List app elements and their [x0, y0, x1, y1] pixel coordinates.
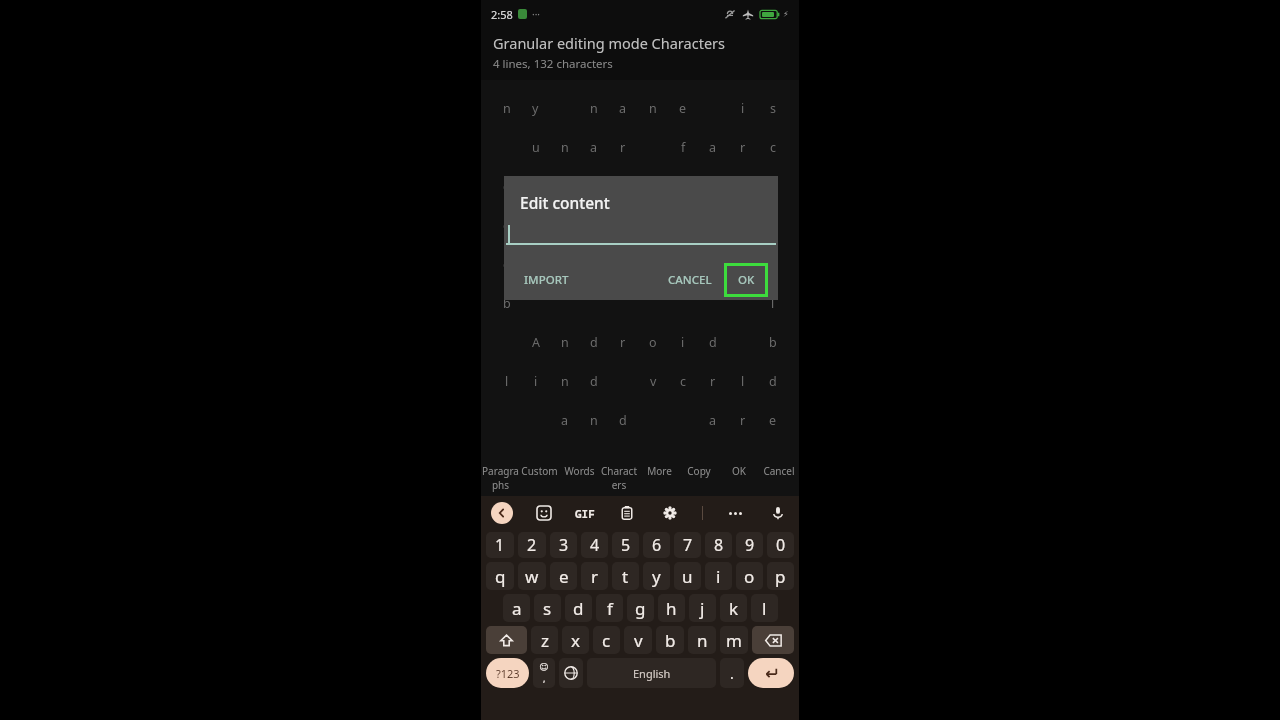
button[interactable]: More [639, 464, 679, 496]
button[interactable]: Characters [599, 464, 639, 496]
staticText: e [503, 217, 511, 234]
staticText: Granular editing mode Characters [493, 33, 725, 53]
button[interactable]: OK [719, 464, 759, 496]
button[interactable]: 0 [767, 532, 794, 558]
button[interactable]: i [705, 562, 732, 590]
button[interactable]: Shift [486, 626, 527, 654]
button[interactable]: GIF [575, 506, 595, 521]
button[interactable]: 6 [643, 532, 670, 558]
staticText: 2:58 [491, 7, 513, 22]
staticText: 0 [776, 534, 786, 556]
staticText: k [729, 597, 739, 620]
button[interactable]: c [593, 626, 620, 654]
button[interactable]: Enter [748, 658, 794, 688]
button[interactable]: g [627, 594, 654, 622]
staticText: n [649, 100, 657, 117]
button[interactable]: 4 [581, 532, 608, 558]
button[interactable]: a [503, 594, 530, 622]
staticText: x [571, 629, 580, 652]
staticText: r [740, 412, 746, 429]
staticText: r [591, 565, 599, 588]
staticText: d [590, 373, 598, 390]
button[interactable]: Clipboard [616, 502, 638, 524]
button[interactable]: Back [491, 502, 513, 524]
staticText: t [622, 565, 629, 588]
button[interactable]: s [534, 594, 561, 622]
button[interactable]: Paragraphs [481, 464, 520, 496]
button[interactable]: v [624, 626, 652, 654]
staticText: n [503, 100, 511, 117]
staticText: c [503, 178, 510, 195]
staticText: e [559, 565, 569, 588]
button[interactable]: y [643, 562, 670, 590]
staticText: j [700, 597, 705, 620]
staticText: b [503, 295, 511, 312]
button[interactable]: 2 [518, 532, 546, 558]
button[interactable]: p [767, 562, 794, 590]
button[interactable]: f [596, 594, 623, 622]
button[interactable]: Emoji key [533, 658, 555, 688]
staticText: OK [732, 464, 746, 478]
staticText: 2 [527, 534, 537, 556]
staticText: c [770, 139, 777, 156]
button[interactable]: Settings [659, 502, 681, 524]
button[interactable]: r [581, 562, 608, 590]
staticText: 7 [683, 534, 693, 556]
staticText: 6 [652, 534, 662, 556]
button[interactable]: OK [727, 266, 765, 294]
button[interactable]: English [587, 658, 716, 688]
button[interactable]: h [658, 594, 685, 622]
button[interactable]: j [689, 594, 716, 622]
button[interactable]: e [550, 562, 577, 590]
staticText: 4 lines, 132 characters [493, 56, 613, 72]
button[interactable]: Words [559, 464, 599, 496]
button[interactable]: Change language [559, 658, 583, 688]
button[interactable]: w [518, 562, 546, 590]
button[interactable]: 7 [674, 532, 701, 558]
staticText: a [709, 139, 717, 156]
button[interactable]: d [565, 594, 592, 622]
button[interactable]: . [720, 658, 744, 688]
button[interactable]: Backspace [752, 626, 794, 654]
button[interactable]: Emoji [533, 502, 555, 524]
staticText: g [635, 597, 646, 620]
staticText: Characters [599, 464, 639, 492]
button[interactable]: 5 [612, 532, 639, 558]
staticText: ?123 [496, 666, 520, 681]
button[interactable]: IMPORT [524, 272, 569, 288]
staticText: n [590, 412, 598, 429]
button[interactable]: t [612, 562, 639, 590]
button[interactable]: n [688, 626, 716, 654]
staticText: d [573, 597, 584, 620]
button[interactable]: 8 [705, 532, 732, 558]
button[interactable]: k [720, 594, 747, 622]
staticText: . [730, 664, 734, 683]
staticText: Paragraphs [481, 464, 520, 492]
staticText: 9 [745, 534, 755, 556]
staticText: i [534, 373, 538, 390]
button[interactable]: l [751, 594, 778, 622]
staticText: s [543, 597, 552, 620]
button[interactable]: x [562, 626, 589, 654]
button[interactable]: 3 [550, 532, 577, 558]
button[interactable]: z [531, 626, 558, 654]
staticText: l [505, 373, 509, 390]
staticText: English [633, 666, 671, 681]
button[interactable]: ?123 [486, 658, 529, 688]
button[interactable]: Custom [520, 464, 559, 496]
staticText: ··· [532, 7, 541, 21]
button[interactable]: u [674, 562, 701, 590]
button[interactable]: More options [724, 502, 746, 524]
button[interactable]: 1 [486, 532, 514, 558]
button[interactable]: q [486, 562, 514, 590]
button[interactable]: CANCEL [668, 272, 712, 288]
button[interactable]: m [720, 626, 748, 654]
button[interactable]: 9 [736, 532, 763, 558]
button[interactable]: b [656, 626, 684, 654]
button[interactable]: Copy [679, 464, 719, 496]
button[interactable]: Cancel [759, 464, 799, 496]
button[interactable]: Voice input [767, 502, 789, 524]
button[interactable]: o [736, 562, 763, 590]
staticText: i [741, 100, 745, 117]
